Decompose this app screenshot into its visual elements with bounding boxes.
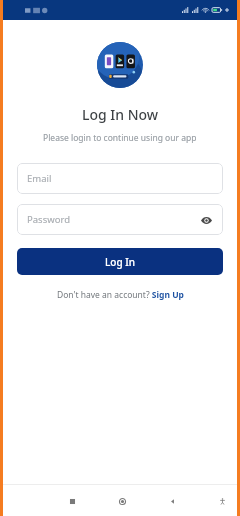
- button[interactable]: Recent apps: [61, 490, 83, 512]
- button[interactable]: Back: [161, 490, 183, 512]
- staticText: Password: [27, 213, 70, 226]
- button[interactable]: Show password: [199, 213, 213, 227]
- button[interactable]: Home: [111, 490, 133, 512]
- staticText: Don't have an account? Sign Up: [57, 289, 184, 301]
- button[interactable]: Accessibility: [211, 490, 233, 512]
- button[interactable]: Log In: [17, 248, 223, 275]
- staticText: Log In: [105, 255, 136, 269]
- staticText: Please login to continue using our app: [43, 132, 197, 144]
- button[interactable]: Email: [17, 163, 223, 194]
- button[interactable]: Password: [17, 204, 223, 235]
- staticText: Email: [27, 172, 52, 185]
- staticText: Log In Now: [82, 105, 159, 124]
- button[interactable]: Don't have an account? Sign Up: [51, 287, 190, 303]
